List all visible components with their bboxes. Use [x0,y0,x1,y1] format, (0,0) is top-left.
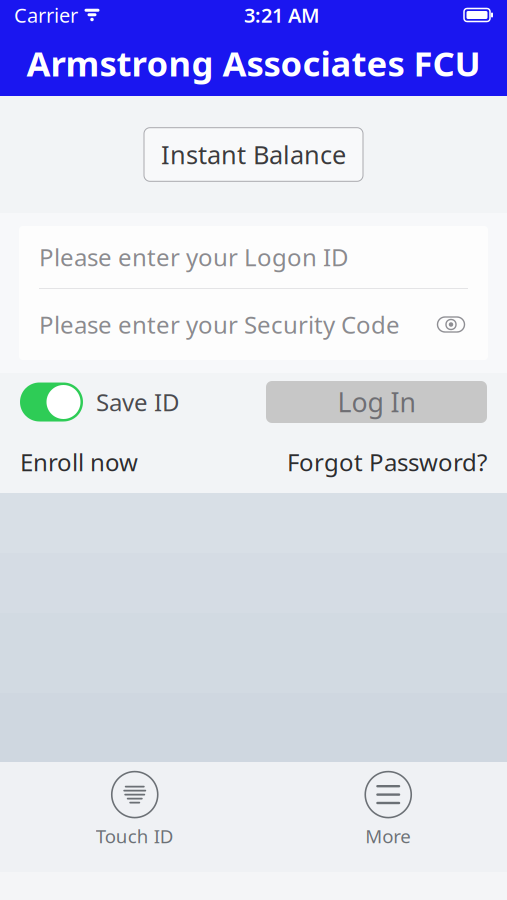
button[interactable]: Show security code [434,309,468,339]
staticText: Log In [337,384,415,420]
staticText: Instant Balance [161,138,346,171]
staticText: Armstrong Associates FCU [26,40,480,86]
button[interactable]: More [365,772,411,848]
staticText: Enroll now [20,446,138,478]
staticText: Carrier [14,2,78,28]
button[interactable]: Enroll now [20,446,138,478]
staticText: Save ID [96,386,180,418]
button[interactable]: Touch ID [96,772,174,848]
staticText: More [365,824,411,848]
button[interactable]: Instant Balance [144,128,363,181]
staticText: Please enter your Logon ID [39,241,349,273]
button[interactable]: Forgot Password? [287,446,487,478]
button[interactable]: Log In [266,381,487,423]
staticText: Please enter your Security Code [39,309,400,340]
staticText: 3:21 AM [244,2,320,28]
staticText: Forgot Password? [287,446,487,478]
staticText: Touch ID [96,824,174,848]
button[interactable]: Save ID [20,382,180,421]
